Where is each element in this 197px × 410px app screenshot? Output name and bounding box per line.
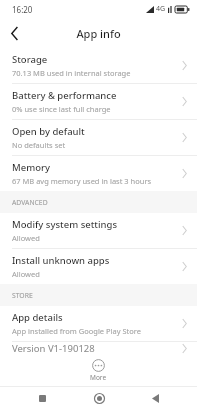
staticText: 67 MB avg memory used in last 3 hours xyxy=(12,176,152,186)
button[interactable]: Modify system settings xyxy=(0,213,197,248)
staticText: 16:20 xyxy=(12,4,33,15)
staticText: No defaults set xyxy=(12,140,66,150)
button[interactable]: Version V1-190128 xyxy=(0,342,197,354)
button[interactable]: Storage xyxy=(0,48,197,83)
button[interactable]: Back xyxy=(0,18,30,48)
staticText: Allowed xyxy=(12,269,40,279)
staticText: App installed from Google Play Store xyxy=(12,326,141,336)
staticText: App details xyxy=(12,311,63,324)
button[interactable]: Install unknown apps xyxy=(0,249,197,284)
button[interactable]: Recents xyxy=(27,386,57,410)
staticText: More xyxy=(90,373,107,382)
staticText: Install unknown apps xyxy=(12,254,110,267)
staticText: 70.13 MB used in internal storage xyxy=(12,68,131,78)
staticText: Battery & performance xyxy=(12,89,117,102)
staticText: Allowed xyxy=(12,233,40,243)
staticText: Storage xyxy=(12,53,48,66)
button[interactable]: Back xyxy=(140,386,170,410)
button[interactable]: Battery & performance xyxy=(0,84,197,119)
button[interactable]: Open by default xyxy=(0,120,197,155)
staticText: Memory xyxy=(12,161,51,174)
button[interactable]: App details xyxy=(0,306,197,341)
button[interactable]: More xyxy=(80,357,117,384)
staticText: Open by default xyxy=(12,125,85,138)
staticText: Version V1-190128 xyxy=(12,342,95,354)
button[interactable]: Memory xyxy=(0,156,197,191)
staticText: App info xyxy=(76,26,121,41)
staticText: ADVANCED xyxy=(12,198,48,207)
staticText: STORE xyxy=(12,291,33,300)
staticText: 4G xyxy=(156,4,166,14)
button[interactable]: Home xyxy=(84,386,114,410)
staticText: Modify system settings xyxy=(12,218,118,231)
staticText: 0% use since last full charge xyxy=(12,104,111,114)
